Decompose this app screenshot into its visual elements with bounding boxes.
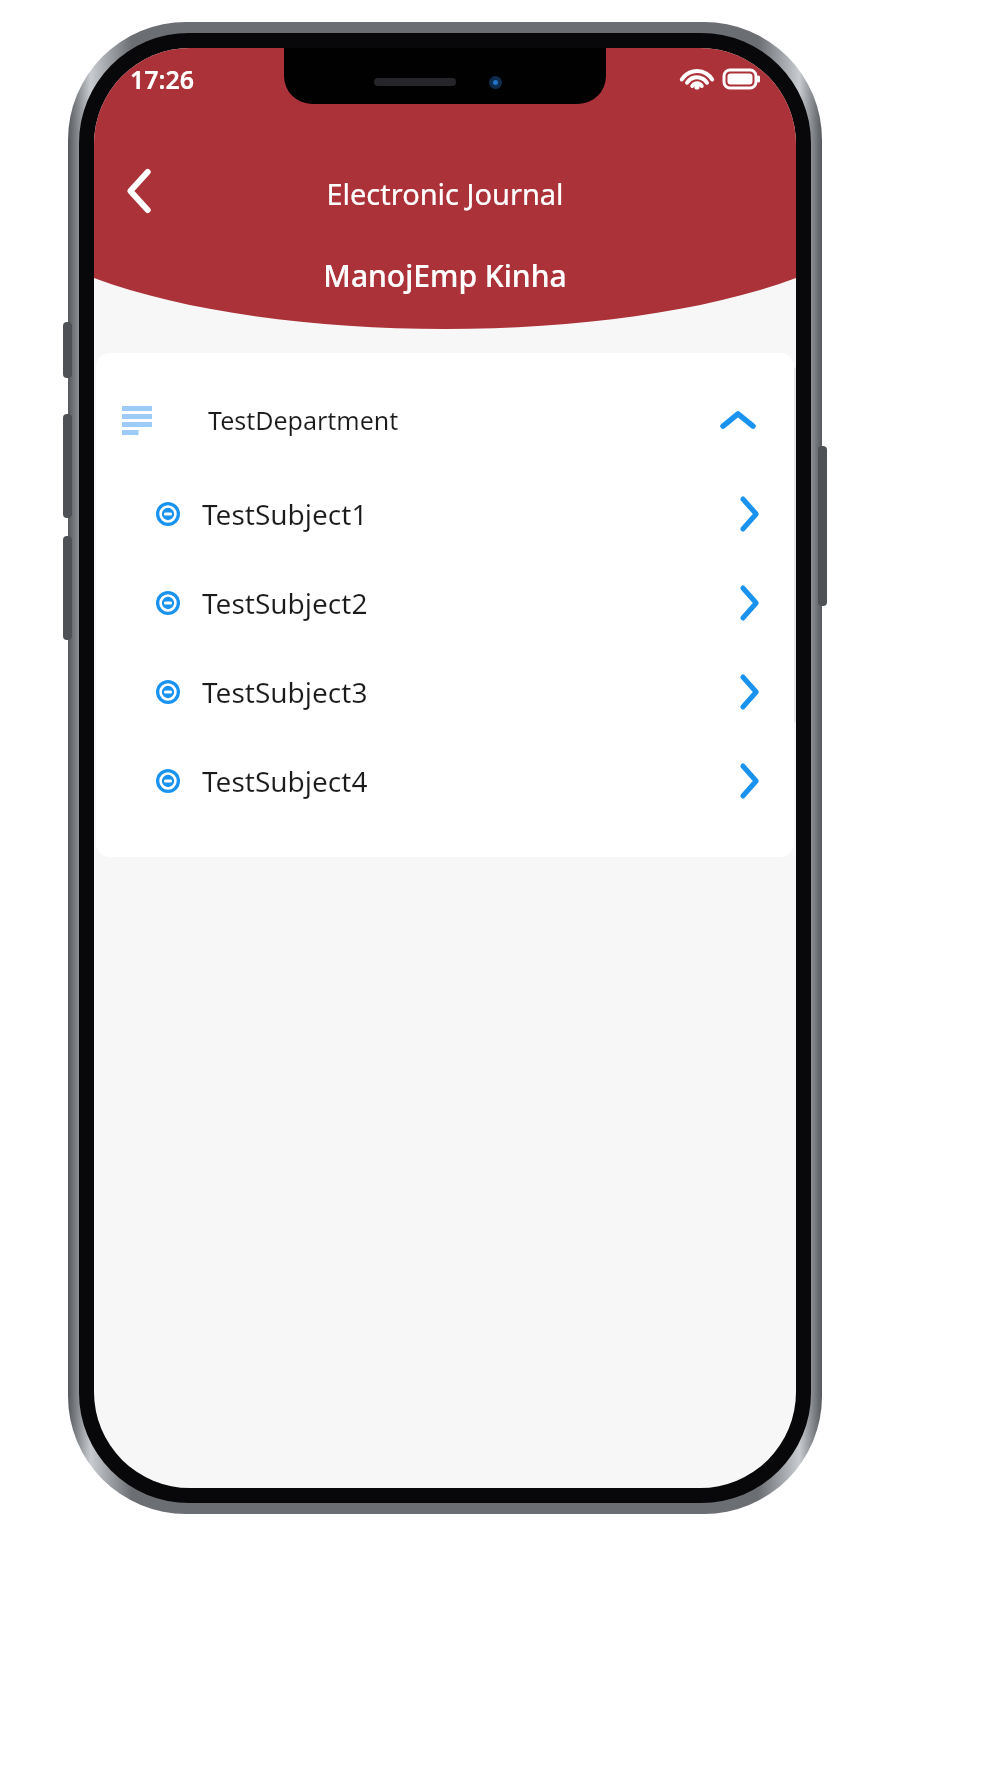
staticText: TestDepartment [208,403,399,437]
staticText: 17:26 [130,62,195,96]
button[interactable]: TestSubject3 [96,647,794,736]
button[interactable]: Back [108,160,170,222]
staticText: ManojEmp Kinha [94,255,796,296]
staticText: TestSubject3 [202,673,368,711]
button[interactable]: TestSubject2 [96,558,794,647]
staticText: Electronic Journal [94,174,796,213]
button[interactable]: Collapse [716,398,760,442]
button[interactable]: TestSubject1 [96,469,794,558]
button[interactable]: TestSubject4 [96,736,794,825]
staticText: TestSubject2 [202,584,368,622]
staticText: TestSubject1 [202,495,368,533]
staticText: TestSubject4 [202,762,368,800]
button[interactable]: TestDepartment [96,383,794,457]
